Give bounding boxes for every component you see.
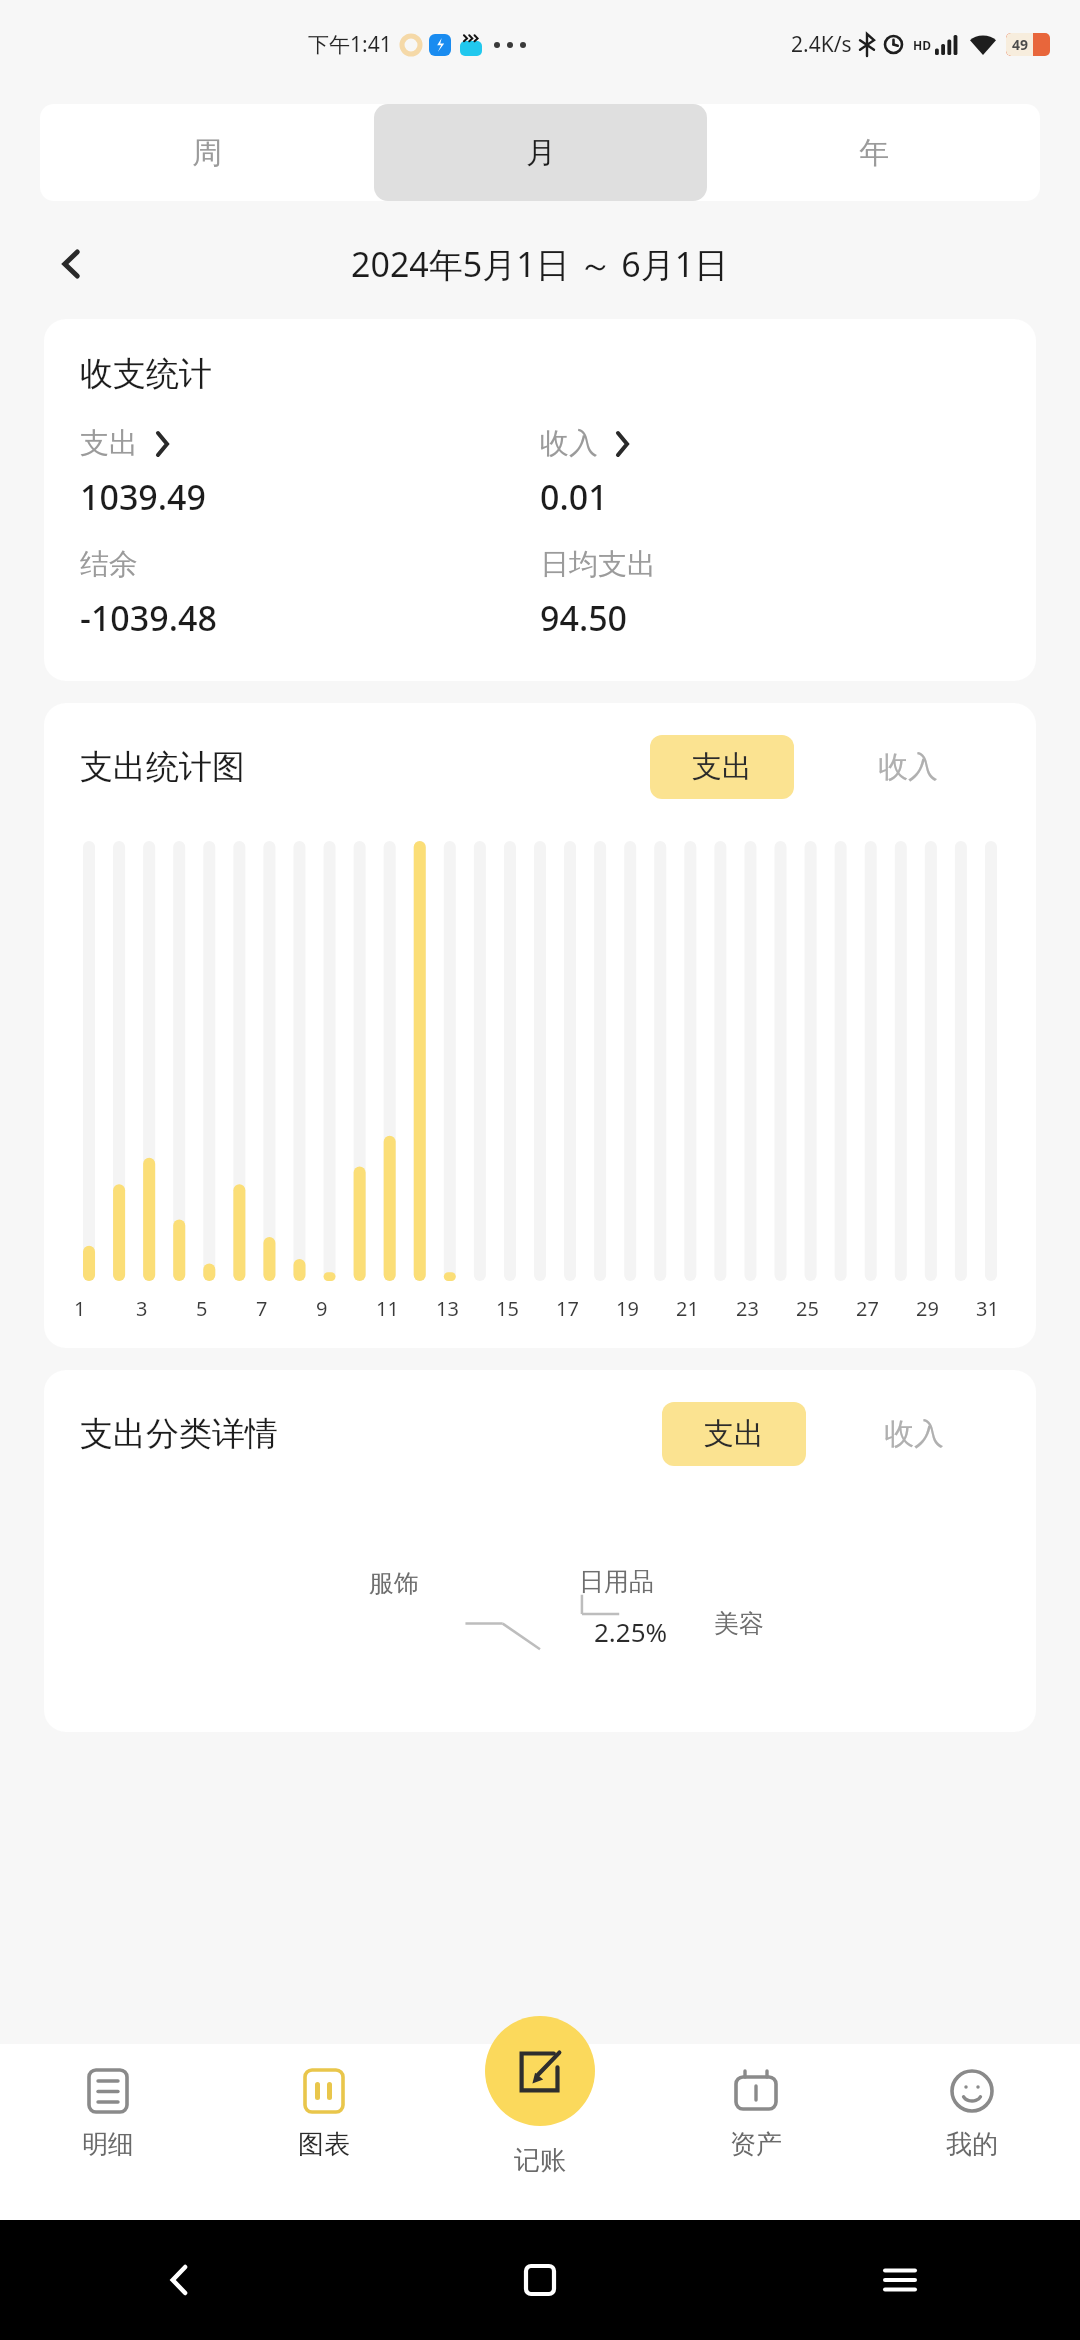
staticText: 49 xyxy=(1012,35,1029,54)
staticText: 94.50 xyxy=(540,595,628,641)
staticText: 13日 xyxy=(436,1295,466,1322)
button[interactable]: 资产 xyxy=(648,2066,864,2220)
button[interactable]: 记账 xyxy=(485,2016,595,2126)
staticText: 月 xyxy=(526,134,556,172)
button[interactable]: 收入 xyxy=(842,1402,986,1466)
button[interactable]: 周 xyxy=(40,104,374,201)
staticText: 11日 xyxy=(376,1295,406,1322)
staticText: 美容 xyxy=(714,1608,764,1639)
staticText: 收入 xyxy=(540,425,598,462)
staticText: 明细 xyxy=(82,2128,134,2161)
button[interactable]: 支出 xyxy=(662,1402,806,1466)
staticText: 记账 xyxy=(514,2144,566,2177)
button[interactable]: 收入 xyxy=(836,735,980,799)
staticText: 结余 xyxy=(80,546,138,583)
staticText: 日用品 xyxy=(579,1566,654,1597)
staticText: 27日 xyxy=(856,1295,886,1322)
staticText: 2024年5月1日 ～ 6月1日 xyxy=(351,241,729,287)
button[interactable]: Back xyxy=(44,236,100,292)
button[interactable]: Home xyxy=(500,2240,580,2320)
button[interactable]: 支出 xyxy=(80,425,540,520)
staticText: 15日 xyxy=(496,1295,526,1322)
staticText: 支出 xyxy=(704,1415,764,1453)
staticText: 支出分类详情 xyxy=(80,1413,278,1455)
staticText: 19日 xyxy=(616,1295,646,1322)
staticText: 资产 xyxy=(730,2128,782,2161)
button[interactable]: Back xyxy=(140,2240,220,2320)
button[interactable]: 我的 xyxy=(864,2066,1080,2220)
button[interactable]: 收入 xyxy=(540,425,1000,520)
staticText: 1日 xyxy=(74,1295,105,1322)
staticText: 31日 xyxy=(976,1295,1006,1322)
button[interactable]: 图表 xyxy=(216,2066,432,2220)
staticText: 我的 xyxy=(946,2128,998,2161)
button[interactable]: 年 xyxy=(707,104,1040,201)
staticText: 29日 xyxy=(916,1295,946,1322)
staticText: 2.25% xyxy=(594,1614,668,1649)
staticText: 收入 xyxy=(878,748,938,786)
button[interactable]: Recents xyxy=(860,2240,940,2320)
staticText: 25日 xyxy=(796,1295,826,1322)
staticText: 支出 xyxy=(692,748,752,786)
staticText: 9日 xyxy=(316,1295,346,1322)
button[interactable]: 明细 xyxy=(0,2066,216,2220)
staticText: HD xyxy=(913,37,931,53)
staticText: 1039.49 xyxy=(80,474,206,520)
staticText: 7日 xyxy=(256,1295,286,1322)
staticText: -1039.48 xyxy=(80,595,217,641)
staticText: 收支统计 xyxy=(80,353,212,395)
button[interactable]: 月 xyxy=(374,104,707,201)
staticText: 0.01 xyxy=(540,474,608,520)
staticText: 21日 xyxy=(676,1295,706,1322)
staticText: 17日 xyxy=(556,1295,586,1322)
staticText: 支出 xyxy=(80,425,138,462)
staticText: 下午1:41 xyxy=(308,30,392,59)
staticText: 周 xyxy=(192,134,222,172)
staticText: 支出统计图 xyxy=(80,746,245,788)
staticText: 图表 xyxy=(298,2128,350,2161)
staticText: 日均支出 xyxy=(540,546,656,583)
staticText: 年 xyxy=(859,134,889,172)
staticText: 收入 xyxy=(884,1415,944,1453)
staticText: 5日 xyxy=(196,1295,226,1322)
staticText: 服饰 xyxy=(369,1568,419,1599)
staticText: 2.4K/s xyxy=(791,30,852,59)
button[interactable]: 支出 xyxy=(650,735,794,799)
staticText: 3日 xyxy=(136,1295,166,1322)
staticText: 23日 xyxy=(736,1295,766,1322)
